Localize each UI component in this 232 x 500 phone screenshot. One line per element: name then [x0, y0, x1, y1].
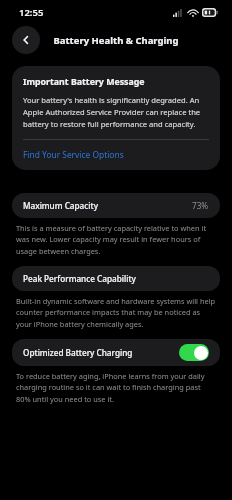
staticText: 73%	[192, 200, 209, 211]
button[interactable]: Back	[12, 26, 40, 54]
button[interactable]: Find Your Service Options	[23, 149, 209, 160]
staticText: Peak Performance Capability	[23, 273, 136, 284]
staticText: Important Battery Message	[23, 76, 145, 88]
staticText: Built-in dynamic software and hardware s…	[16, 296, 216, 329]
staticText: Find Your Service Options	[23, 149, 124, 160]
staticText: Battery Health & Charging	[53, 34, 179, 47]
staticText: 12:55	[19, 6, 44, 19]
button[interactable]: Optimized Battery Charging	[12, 339, 220, 366]
button[interactable]: Optimized Battery Charging toggle	[179, 344, 209, 361]
button[interactable]: Maximum Capacity	[12, 193, 220, 218]
button[interactable]: Peak Performance Capability	[12, 266, 220, 291]
staticText: To reduce battery aging, iPhone learns f…	[16, 371, 216, 404]
staticText: Optimized Battery Charging	[23, 347, 133, 358]
staticText: Maximum Capacity	[23, 200, 98, 211]
staticText: Your battery's health is significantly d…	[23, 95, 209, 130]
staticText: This is a measure of battery capacity re…	[16, 223, 216, 256]
